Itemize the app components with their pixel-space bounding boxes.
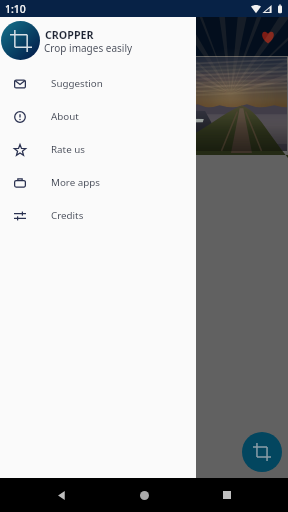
button[interactable]: Crop image — [242, 432, 282, 472]
button[interactable]: Rate us — [0, 133, 196, 166]
staticText: 1:10 — [5, 2, 26, 16]
button[interactable]: More apps — [0, 166, 196, 199]
button[interactable]: Home — [131, 482, 157, 508]
button[interactable]: Credits — [0, 199, 196, 232]
button[interactable]: Back — [48, 482, 74, 508]
staticText: More apps — [51, 176, 100, 189]
button[interactable]: Recent apps — [214, 482, 240, 508]
staticText: Rate us — [51, 143, 85, 156]
button[interactable]: Favorite — [254, 23, 282, 51]
staticText: CROPPER — [45, 28, 94, 43]
button[interactable]: About — [0, 100, 196, 133]
staticText: Crop images easily — [44, 41, 133, 55]
button[interactable]: Suggestion — [0, 67, 196, 100]
staticText: Suggestion — [51, 77, 103, 90]
staticText: About — [51, 110, 79, 123]
staticText: Credits — [51, 209, 84, 222]
